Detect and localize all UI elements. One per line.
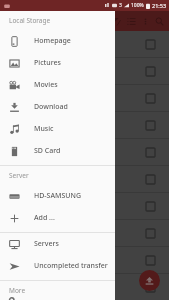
button[interactable]: Pictures [0,52,115,74]
button[interactable]: Movies [0,74,115,96]
staticText: 21:53 [152,2,167,9]
button[interactable]: Upload [139,270,160,291]
staticText: Server [9,171,29,180]
staticText: Homepage [34,36,71,46]
button[interactable]: SD Card [0,140,115,162]
staticText: 100% [131,2,144,9]
staticText: Uncompleted transfer [34,261,108,271]
staticText: Movies [34,80,58,90]
button[interactable]: Download [0,96,115,118]
button[interactable]: Music [0,118,115,140]
button[interactable]: Search [152,14,167,29]
button[interactable]: Add ... [0,207,115,229]
button[interactable] [0,31,169,57]
staticText: 3 [119,2,122,9]
button[interactable] [0,247,169,273]
staticText: Pictures [34,58,61,68]
button[interactable] [0,58,169,84]
button[interactable]: Homepage [0,30,115,52]
button[interactable]: More options [139,15,152,28]
button[interactable]: Uncompleted transfer [0,255,115,277]
button[interactable] [0,193,169,219]
staticText: Local Storage [9,16,51,25]
button[interactable]: HD-SAMSUNG [0,185,115,207]
staticText: Music [34,124,54,134]
staticText: Add ... [34,213,55,223]
staticText: HD-SAMSUNG [34,191,81,201]
staticText: SD Card [34,146,61,156]
button[interactable] [0,274,169,300]
button[interactable]: View mode [124,14,139,29]
button[interactable]: Servers [0,233,115,255]
staticText: Download [34,102,68,112]
staticText: Servers [34,239,59,249]
button[interactable] [0,166,169,192]
staticText: More [9,286,26,295]
button[interactable] [0,85,169,111]
button[interactable] [0,220,169,246]
button[interactable]: Sort [109,14,124,29]
button[interactable] [0,139,169,165]
button[interactable] [0,112,169,138]
